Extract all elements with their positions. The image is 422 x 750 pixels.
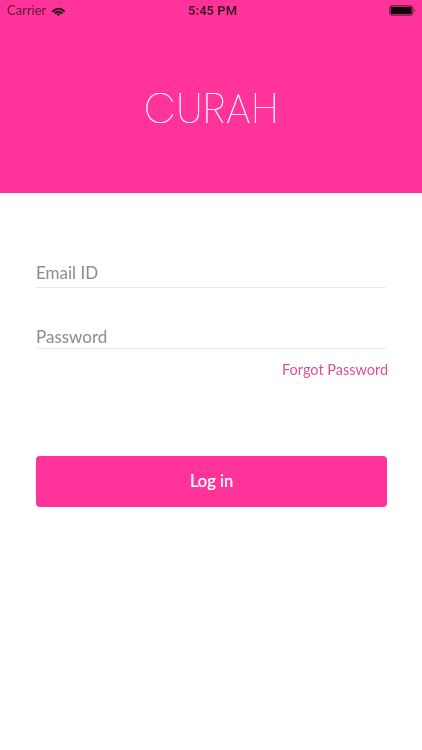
button[interactable]: Forgot Password [282,361,389,378]
staticText: Password [36,326,108,346]
staticText: 5:45 PM [188,3,238,18]
staticText: Log in [190,471,234,491]
button[interactable]: Email ID [0,262,422,288]
button[interactable]: Password [0,326,422,349]
staticText: Forgot Password [282,361,389,378]
staticText: Carrier [7,2,47,18]
other: Battery full [389,5,416,16]
other: Wi-Fi signal [51,5,66,16]
staticText: CURAH [144,80,280,137]
staticText: Email ID [36,262,99,282]
button[interactable]: Log in [36,456,387,507]
